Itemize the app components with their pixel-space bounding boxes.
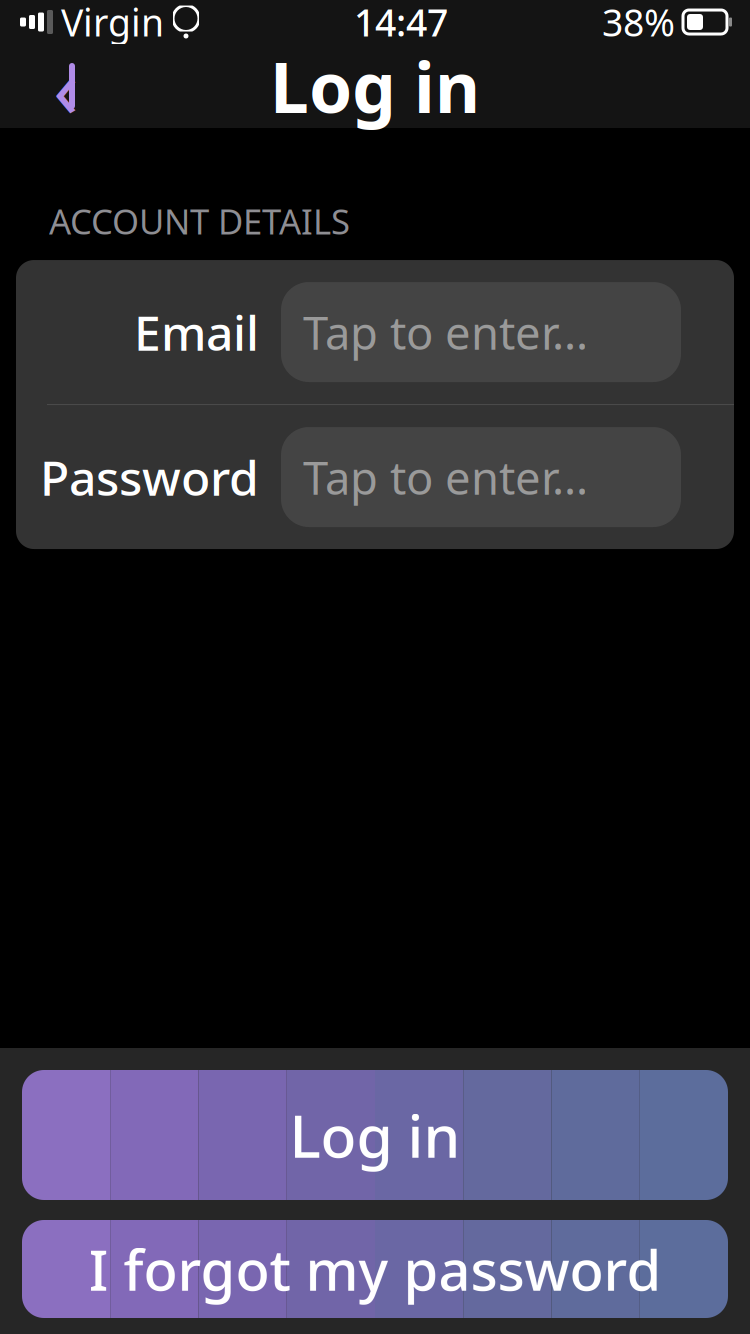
staticText: Log in: [289, 1096, 460, 1174]
staticText: Tap to enter...: [303, 302, 588, 362]
staticText: Virgin: [61, 0, 164, 47]
staticText: Tap to enter...: [303, 447, 588, 507]
staticText: I forgot my password: [88, 1232, 661, 1306]
staticText: ACCOUNT DETAILS: [49, 198, 350, 244]
button[interactable]: I forgot my password: [22, 1220, 728, 1318]
button[interactable]: Back: [24, 44, 108, 128]
staticText: Password: [40, 445, 259, 509]
staticText: 14:47: [354, 0, 448, 47]
button[interactable]: Email: [16, 260, 734, 404]
staticText: Email: [134, 300, 259, 364]
button[interactable]: Password: [16, 405, 734, 549]
staticText: Log in: [270, 40, 480, 132]
staticText: ‹: [53, 31, 79, 141]
staticText: 38%: [602, 0, 675, 47]
button[interactable]: Log in: [22, 1070, 728, 1200]
